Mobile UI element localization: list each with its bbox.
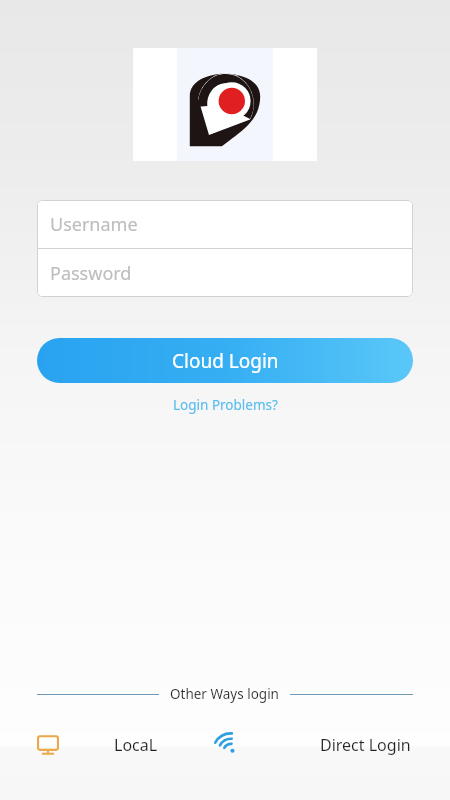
button[interactable]: Username — [37, 200, 413, 248]
button[interactable]: Local login — [0, 733, 225, 757]
other: Direct login — [225, 733, 249, 757]
button[interactable]: Login Problems? — [167, 394, 284, 416]
staticText: LocaL — [114, 734, 158, 756]
staticText: Direct Login — [320, 734, 411, 756]
button[interactable]: Cloud Login — [37, 338, 413, 383]
staticText: Login Problems? — [173, 396, 278, 414]
staticText: Other Ways login — [170, 685, 279, 703]
staticText: Cloud Login — [172, 348, 279, 374]
button[interactable]: Direct login — [225, 733, 450, 757]
button[interactable]: Password — [37, 249, 413, 297]
staticText: Password — [50, 261, 132, 286]
other: Local login — [36, 733, 60, 757]
staticText: Username — [50, 212, 138, 237]
